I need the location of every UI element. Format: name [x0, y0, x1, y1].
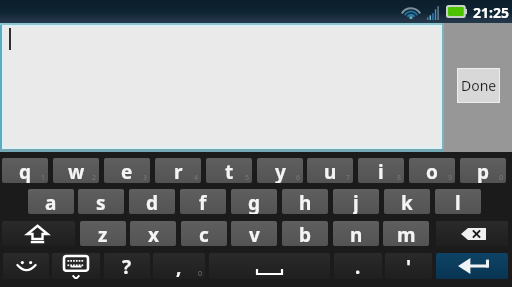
button[interactable]: p: [460, 158, 506, 183]
button[interactable]: Emoji: [3, 253, 49, 279]
staticText: e: [121, 159, 133, 183]
staticText: m: [397, 222, 416, 246]
staticText: c: [199, 222, 209, 246]
staticText: q: [19, 159, 32, 183]
staticText: 9: [448, 173, 453, 183]
button[interactable]: t: [206, 158, 252, 183]
button[interactable]: ': [385, 253, 432, 279]
button[interactable]: k: [384, 189, 430, 214]
button[interactable]: d: [129, 189, 175, 214]
staticText: b: [299, 222, 312, 246]
button[interactable]: Done: [458, 69, 499, 102]
button[interactable]: e: [104, 158, 150, 183]
staticText: f: [199, 190, 207, 214]
staticText: 5: [245, 173, 250, 183]
button[interactable]: Shift: [2, 221, 75, 246]
staticText: g: [248, 190, 261, 214]
button[interactable]: f: [180, 189, 226, 214]
staticText: w: [68, 159, 85, 183]
staticText: ?: [122, 254, 132, 279]
staticText: 8: [397, 173, 402, 183]
button[interactable]: Enter: [436, 253, 508, 279]
button[interactable]: .: [334, 253, 382, 279]
staticText: 1: [41, 173, 46, 183]
button[interactable]: v: [231, 221, 277, 246]
staticText: d: [146, 190, 159, 214]
staticText: ': [406, 254, 412, 279]
button[interactable]: r: [155, 158, 201, 183]
button[interactable]: g: [231, 189, 277, 214]
staticText: x: [148, 222, 159, 246]
staticText: ,: [176, 254, 182, 279]
staticText: i: [378, 159, 384, 183]
staticText: z: [98, 222, 108, 246]
button[interactable]: h: [282, 189, 328, 214]
button[interactable]: n: [333, 221, 379, 246]
button[interactable]: [0, 23, 444, 152]
staticText: 0: [198, 269, 203, 279]
button[interactable]: s: [78, 189, 124, 214]
button[interactable]: ?: [104, 253, 150, 279]
staticText: 21:25: [473, 3, 509, 22]
button[interactable]: m: [383, 221, 429, 246]
button[interactable]: y: [257, 158, 303, 183]
button[interactable]: q: [2, 158, 48, 183]
button[interactable]: l: [435, 189, 481, 214]
staticText: 7: [346, 173, 351, 183]
staticText: 6: [296, 173, 301, 183]
button[interactable]: c: [181, 221, 227, 246]
staticText: 3: [143, 173, 148, 183]
staticText: h: [299, 190, 312, 214]
staticText: a: [45, 190, 57, 214]
staticText: t: [225, 159, 234, 183]
button[interactable]: a: [28, 189, 74, 214]
staticText: k: [401, 190, 413, 214]
button[interactable]: i: [358, 158, 404, 183]
button[interactable]: Delete: [436, 221, 508, 246]
button[interactable]: o: [409, 158, 455, 183]
button[interactable]: Change keyboard: [52, 253, 100, 279]
button[interactable]: w: [53, 158, 99, 183]
staticText: l: [455, 190, 461, 214]
staticText: .: [355, 254, 361, 279]
button[interactable]: b: [282, 221, 328, 246]
staticText: j: [353, 190, 359, 214]
staticText: v: [249, 222, 260, 246]
staticText: Done: [461, 76, 497, 95]
staticText: y: [275, 159, 286, 183]
button[interactable]: Space: [209, 253, 330, 279]
staticText: s: [96, 190, 106, 214]
button[interactable]: u: [307, 158, 353, 183]
staticText: 4: [194, 173, 199, 183]
button[interactable]: ,: [153, 253, 205, 279]
staticText: p: [477, 159, 490, 183]
staticText: r: [174, 159, 183, 183]
button[interactable]: x: [130, 221, 176, 246]
button[interactable]: z: [80, 221, 126, 246]
staticText: n: [350, 222, 363, 246]
staticText: o: [426, 159, 438, 183]
staticText: 0: [499, 173, 504, 183]
button[interactable]: j: [333, 189, 379, 214]
staticText: u: [324, 159, 337, 183]
staticText: 2: [92, 173, 97, 183]
